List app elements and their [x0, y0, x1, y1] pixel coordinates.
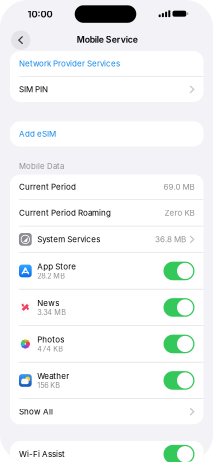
button[interactable]: App Store: [10, 253, 203, 289]
staticText: 69.0 MB: [163, 182, 194, 192]
staticText: News: [37, 298, 59, 308]
staticText: Network Provider Services: [19, 59, 120, 68]
staticText: Mobile Service: [77, 34, 138, 45]
button[interactable]: Photos: [10, 326, 203, 362]
staticText: 474 KB: [37, 344, 63, 353]
button[interactable]: Current Period Roaming: [10, 200, 203, 226]
staticText: Photos: [37, 335, 64, 344]
button[interactable]: Show All: [10, 399, 203, 424]
staticText: 3.34 MB: [37, 308, 66, 317]
staticText: 10:00: [27, 8, 52, 20]
staticText: Mobile Data: [19, 161, 64, 171]
staticText: Weather: [37, 371, 69, 381]
staticText: Current Period: [19, 182, 76, 192]
button[interactable]: Weather: [10, 362, 203, 398]
button[interactable]: Back: [11, 30, 30, 50]
button[interactable]: News: [10, 289, 203, 325]
staticText: 36.8 MB: [155, 235, 186, 244]
staticText: System Services: [37, 235, 100, 244]
staticText: Add eSIM: [19, 129, 56, 139]
staticText: 156 KB: [37, 381, 60, 390]
button[interactable]: Network Provider Services: [10, 51, 203, 76]
staticText: 28.2 MB: [37, 271, 65, 280]
button[interactable]: Current Period: [10, 174, 203, 199]
staticText: Wi-Fi Assist: [19, 449, 65, 459]
button[interactable]: SIM PIN: [10, 77, 203, 102]
staticText: App Store: [37, 262, 76, 271]
button[interactable]: Wi-Fi Assist: [10, 441, 203, 462]
staticText: Show All: [19, 407, 53, 416]
staticText: SIM PIN: [19, 85, 48, 94]
button[interactable]: Add eSIM: [10, 121, 203, 146]
button[interactable]: System Services: [10, 226, 203, 252]
staticText: Zero KB: [164, 208, 194, 218]
staticText: Current Period Roaming: [19, 208, 111, 218]
